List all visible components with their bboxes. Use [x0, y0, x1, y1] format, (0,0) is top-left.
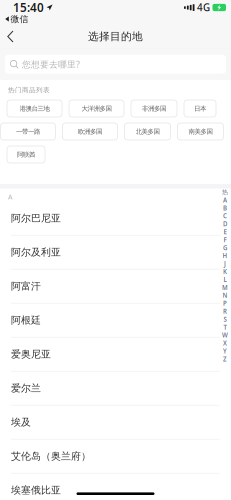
button[interactable]: 日本 — [184, 100, 216, 117]
button[interactable]: 南美多国 — [177, 123, 223, 140]
staticText: 大洋洲多国 — [81, 104, 111, 112]
staticText: C — [223, 212, 227, 220]
staticText: 欧洲多国 — [78, 127, 102, 135]
staticText: M — [222, 283, 228, 292]
button[interactable]: 阿联酋 — [7, 146, 45, 163]
staticText: 阿尔巴尼亚 — [11, 212, 61, 224]
button[interactable]: 爱尔兰 — [0, 371, 231, 405]
staticText: 阿联酋 — [17, 150, 35, 158]
staticText: 4G — [197, 1, 210, 14]
staticText: E — [223, 228, 226, 236]
staticText: 15:40 — [13, 0, 44, 15]
staticText: R — [223, 307, 227, 316]
staticText: N — [222, 291, 227, 300]
staticText: 艾伦岛（奥兰府） — [11, 450, 91, 462]
button[interactable]: 北美多国 — [124, 123, 170, 140]
staticText: A — [8, 192, 12, 201]
staticText: 南美多国 — [188, 127, 212, 135]
staticText: P — [223, 299, 227, 308]
staticText: 阿富汗 — [11, 280, 41, 292]
staticText: 港澳台三地 — [19, 104, 49, 112]
button[interactable]: 您想要去哪里? — [5, 55, 226, 74]
button[interactable]: 阿富汗 — [0, 269, 231, 303]
staticText: 爱奥尼亚 — [11, 348, 51, 360]
button[interactable]: 欧洲多国 — [62, 123, 117, 140]
staticText: J — [224, 259, 226, 268]
button[interactable]: 大洋洲多国 — [69, 100, 124, 117]
button[interactable]: 港澳台三地 — [7, 100, 62, 117]
staticText: F — [223, 236, 226, 244]
staticText: Y — [223, 347, 227, 355]
staticText: B — [223, 204, 227, 212]
staticText: 一带一路 — [16, 127, 40, 135]
staticText: 热门商品列表 — [8, 86, 50, 94]
staticText: 选择目的地 — [88, 30, 143, 43]
staticText: 微信 — [10, 13, 28, 25]
staticText: T — [223, 323, 226, 331]
staticText: 您想要去哪里? — [22, 58, 80, 70]
staticText: W — [222, 331, 228, 339]
staticText: G — [223, 244, 227, 252]
staticText: 阿根廷 — [11, 314, 41, 326]
button[interactable]: Back — [0, 25, 34, 48]
staticText: H — [222, 251, 227, 260]
button[interactable]: 一带一路 — [0, 123, 55, 140]
button[interactable]: 埃塞俄比亚 — [0, 473, 231, 500]
staticText: 非洲多国 — [142, 104, 166, 112]
staticText: 埃及 — [11, 416, 31, 428]
button[interactable]: 阿尔巴尼亚 — [0, 201, 231, 235]
button[interactable]: 爱奥尼亚 — [0, 337, 231, 371]
button[interactable]: 埃及 — [0, 405, 231, 439]
staticText: D — [223, 220, 227, 228]
staticText: K — [223, 267, 227, 276]
staticText: S — [223, 315, 226, 323]
button[interactable]: 非洲多国 — [131, 100, 177, 117]
staticText: X — [223, 339, 227, 347]
staticText: 北美多国 — [135, 127, 159, 135]
staticText: 爱尔兰 — [11, 382, 41, 394]
button[interactable]: 阿根廷 — [0, 303, 231, 337]
staticText: Z — [223, 355, 227, 363]
button[interactable]: 艾伦岛（奥兰府） — [0, 439, 231, 473]
staticText: L — [223, 275, 226, 284]
staticText: 埃塞俄比亚 — [11, 484, 61, 496]
staticText: A — [223, 196, 227, 204]
staticText: 阿尔及利亚 — [11, 246, 61, 258]
button[interactable]: 阿尔及利亚 — [0, 235, 231, 269]
staticText: 日本 — [194, 104, 206, 112]
staticText: 热 — [222, 188, 228, 196]
